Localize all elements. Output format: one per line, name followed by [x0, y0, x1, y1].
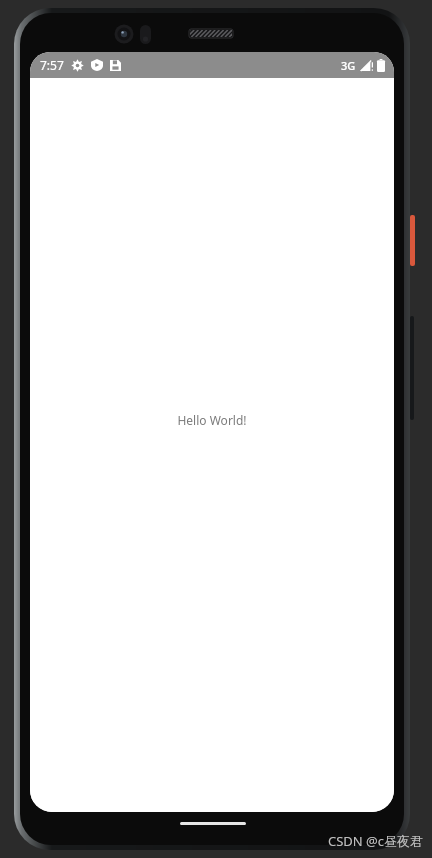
button[interactable]: Storage — [110, 60, 121, 71]
staticText: CSDN @c昼夜君 — [328, 832, 424, 850]
button[interactable]: Settings — [71, 59, 84, 72]
button[interactable]: Security — [91, 59, 103, 71]
staticText: Hello World! — [177, 412, 247, 428]
staticText: 3G — [341, 58, 356, 73]
staticText: 7:57 — [40, 57, 64, 73]
